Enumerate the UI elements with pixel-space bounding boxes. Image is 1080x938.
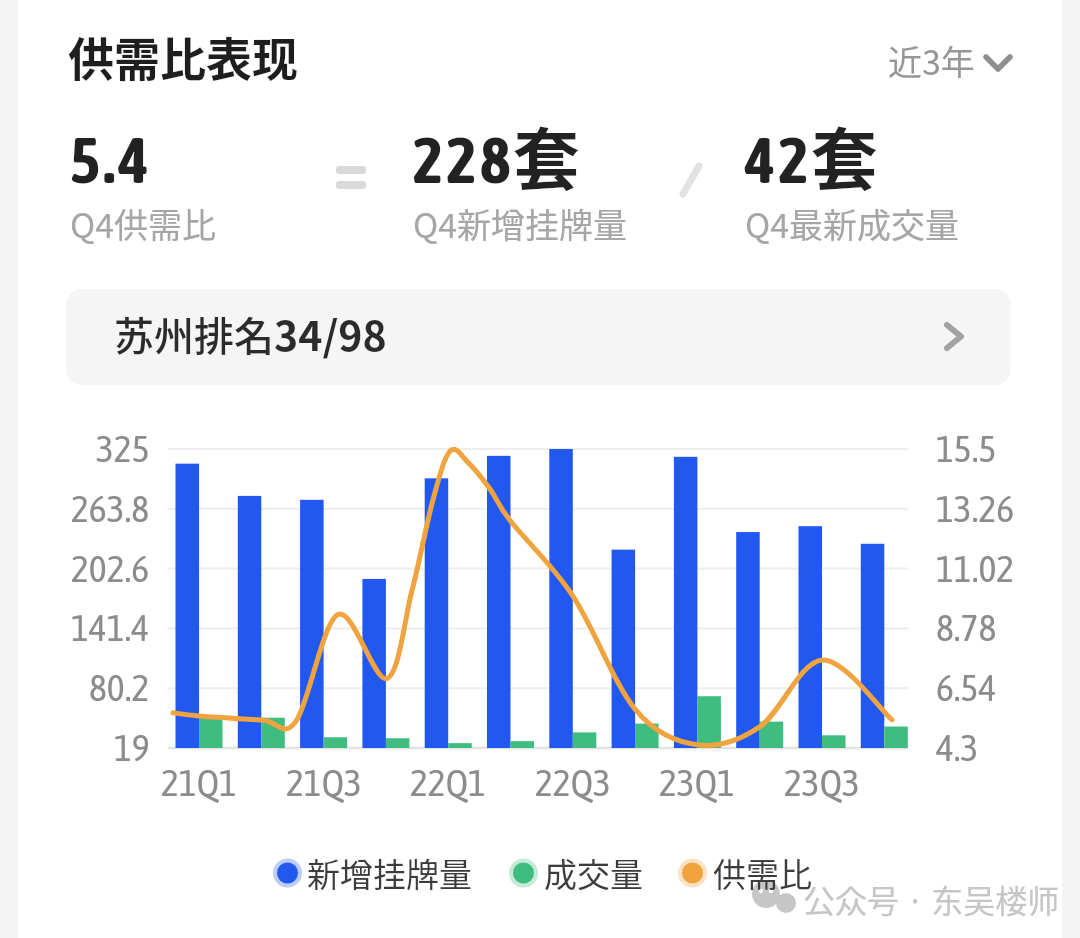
staticText: 11.02 bbox=[936, 547, 1015, 591]
staticText: 141.4 bbox=[71, 606, 150, 650]
staticText: 苏州排名34/98 bbox=[114, 303, 387, 362]
staticText: 套 bbox=[513, 106, 580, 203]
staticText: 6.54 bbox=[936, 666, 997, 710]
staticText: 23Q1 bbox=[659, 761, 735, 805]
staticText: 23Q3 bbox=[784, 761, 860, 805]
staticText: 15.5 bbox=[936, 427, 997, 471]
staticText: 成交量 bbox=[544, 849, 643, 897]
staticText: Q4供需比 bbox=[70, 199, 217, 248]
staticText: 13.26 bbox=[936, 487, 1015, 531]
staticText: 22Q3 bbox=[535, 761, 611, 805]
staticText: 22Q1 bbox=[410, 761, 486, 805]
staticText: 供需比 bbox=[713, 849, 812, 897]
staticText: 供需比表现 bbox=[68, 23, 298, 90]
staticText: 228 bbox=[413, 123, 514, 196]
staticText: 19 bbox=[114, 726, 150, 770]
staticText: 202.6 bbox=[71, 547, 150, 591]
button[interactable]: 近3年 bbox=[880, 36, 1020, 78]
staticText: 42 bbox=[745, 123, 813, 196]
staticText: 近3年 bbox=[888, 36, 975, 78]
staticText: 公众号 · 东吴楼师 bbox=[803, 876, 1060, 922]
staticText: 新增挂牌量 bbox=[307, 849, 472, 897]
staticText: 80.2 bbox=[89, 666, 150, 710]
staticText: 8.78 bbox=[936, 606, 997, 650]
staticText: Q4最新成交量 bbox=[745, 199, 960, 248]
staticText: 套 bbox=[811, 106, 878, 203]
staticText: 21Q1 bbox=[161, 761, 237, 805]
staticText: 21Q3 bbox=[286, 761, 362, 805]
button[interactable]: 苏州排名34/98 bbox=[66, 289, 1011, 385]
staticText: 5.4 bbox=[70, 123, 153, 196]
staticText: Q4新增挂牌量 bbox=[413, 199, 628, 248]
staticText: 4.3 bbox=[936, 726, 979, 770]
staticText: 263.8 bbox=[71, 487, 150, 531]
staticText: 325 bbox=[96, 427, 150, 471]
